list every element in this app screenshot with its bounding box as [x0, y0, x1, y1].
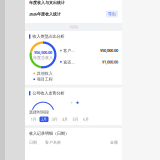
- staticText: ¥56,500.00: [34, 50, 52, 55]
- staticText: 客户名称: [45, 140, 61, 145]
- staticText: ¥1,000.00: [102, 59, 118, 64]
- staticText: 年度收入与支出统计: [29, 0, 65, 5]
- staticText: 金额: [110, 140, 118, 145]
- button[interactable]: 4月: [60, 117, 69, 122]
- staticText: ¥50,000.00: [100, 48, 118, 53]
- staticText: 收入记录明细（日期）: [29, 131, 69, 136]
- button[interactable]: 导出: [106, 10, 118, 17]
- staticText: 5月: [72, 117, 78, 122]
- staticText: 日期: [29, 140, 37, 145]
- button[interactable]: 3月: [50, 117, 59, 122]
- staticText: 2月: [41, 117, 47, 122]
- staticText: 选择时间段: [29, 110, 49, 115]
- staticText: 公司收入走势分析: [32, 91, 64, 96]
- staticText: 项目工程: [37, 77, 53, 82]
- staticText: 收入类型占比分析: [32, 34, 64, 39]
- staticText: 100%: [69, 24, 78, 30]
- staticText: 其他收入: [37, 71, 53, 76]
- staticText: 返还…: [63, 59, 74, 64]
- button[interactable]: 6月: [81, 117, 90, 122]
- staticText: 1月: [30, 117, 36, 122]
- staticText: 6月: [83, 117, 89, 122]
- staticText: 年度总收入: [33, 55, 53, 60]
- staticText: 4月: [62, 117, 68, 122]
- staticText: 导出: [108, 11, 116, 16]
- button[interactable]: 5月: [71, 117, 80, 122]
- staticText: 3月: [51, 117, 57, 122]
- staticText: 客户…: [63, 48, 74, 53]
- button[interactable]: 2月: [39, 117, 48, 122]
- staticText: 2026年度收入统计: [29, 11, 61, 17]
- button[interactable]: 1月: [29, 117, 38, 122]
